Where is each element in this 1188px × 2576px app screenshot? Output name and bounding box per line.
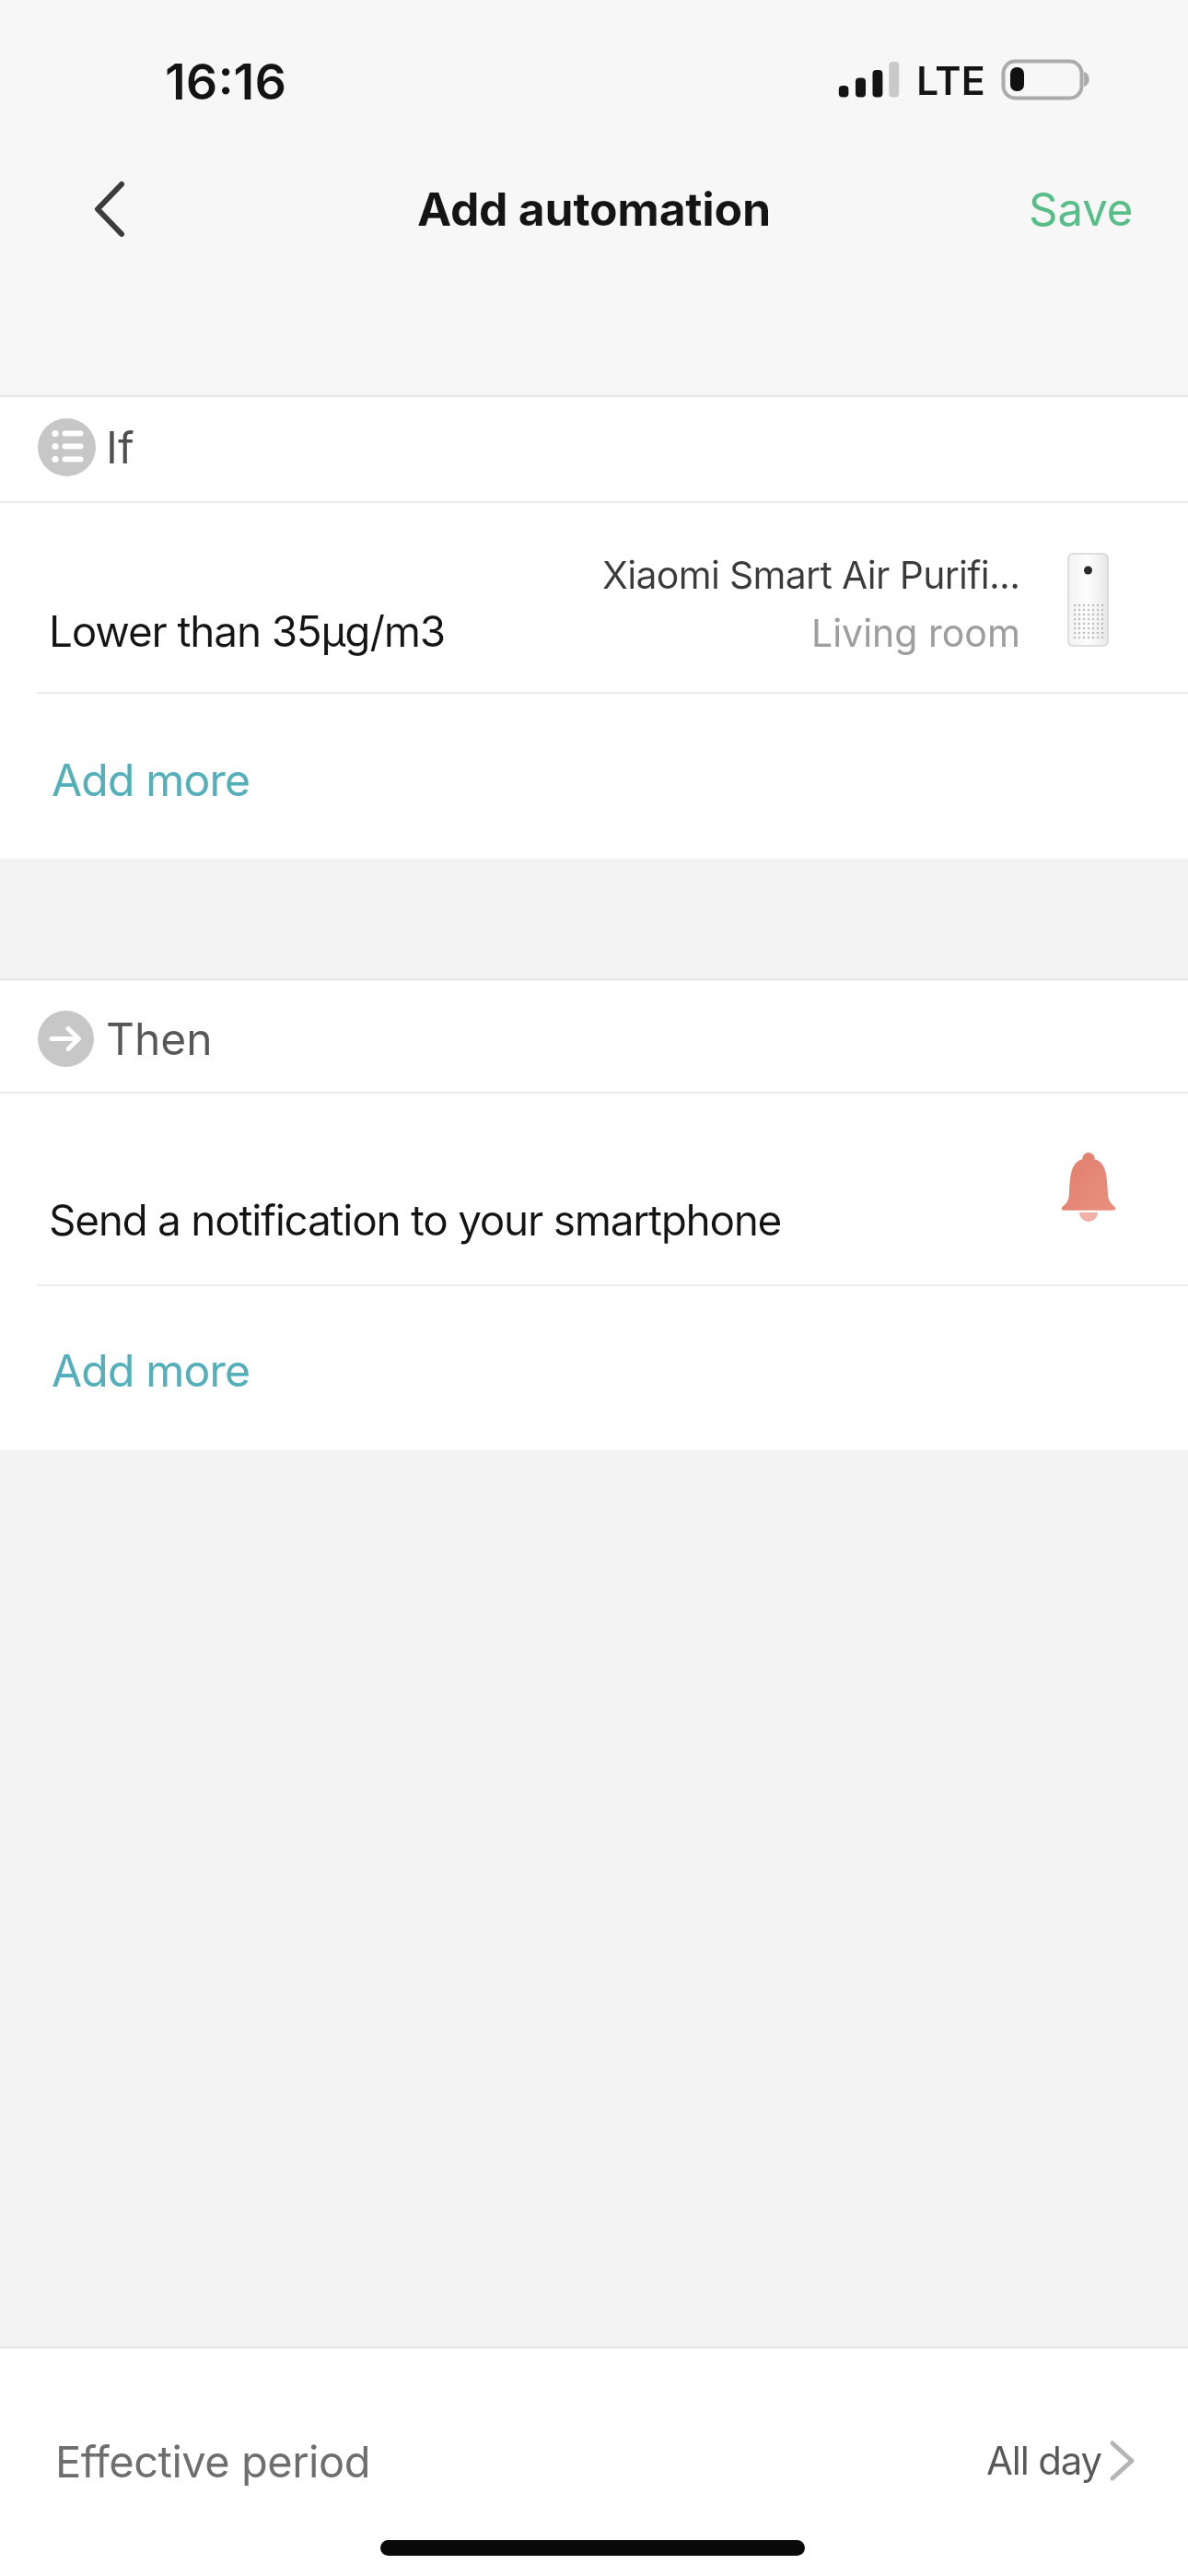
staticText: All day <box>986 2437 1102 2484</box>
staticText: Effective period <box>55 2435 370 2488</box>
staticText: Add more <box>52 753 250 806</box>
staticText: 16:16 <box>165 52 286 111</box>
button[interactable] <box>0 1094 1188 1284</box>
staticText: Lower than 35µg/m3 <box>49 605 446 657</box>
button[interactable] <box>0 503 1188 692</box>
staticText: Living room <box>811 610 1020 656</box>
staticText: If <box>106 420 134 474</box>
button[interactable]: Add more <box>52 1333 420 1407</box>
button[interactable]: Add more <box>52 743 420 816</box>
staticText: Add automation <box>417 181 771 237</box>
button[interactable] <box>72 171 147 247</box>
staticText: Then <box>106 1012 213 1065</box>
button[interactable]: Save <box>961 172 1134 246</box>
staticText: LTE <box>916 56 985 104</box>
staticText: Send a notification to your smartphone <box>49 1194 782 1246</box>
staticText: Add more <box>52 1343 250 1397</box>
staticText: Save <box>1029 182 1134 237</box>
button[interactable] <box>0 2386 1188 2534</box>
staticText: Xiaomi Smart Air Purifi... <box>602 552 1020 598</box>
